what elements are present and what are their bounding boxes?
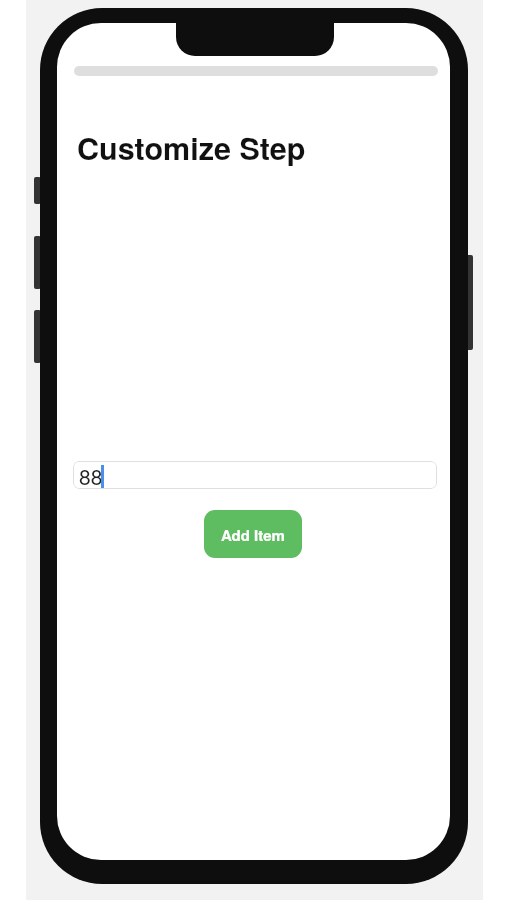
- staticText: Customize Step: [77, 126, 306, 170]
- staticText: Add Item: [221, 524, 285, 545]
- button[interactable]: 88: [73, 461, 437, 489]
- button[interactable]: Add Item: [204, 510, 302, 558]
- staticText: 88: [79, 461, 103, 489]
